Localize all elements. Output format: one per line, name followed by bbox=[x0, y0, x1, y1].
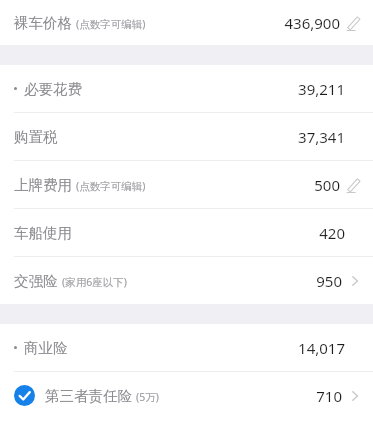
button[interactable]: 交强险 bbox=[0, 257, 373, 304]
button[interactable]: 第三者责任险 bbox=[0, 372, 373, 419]
button[interactable]: 必要花费 bbox=[0, 65, 373, 112]
staticText: 裸车价格 bbox=[14, 14, 72, 32]
staticText: 710 bbox=[316, 386, 342, 406]
staticText: (家用6座以下) bbox=[62, 275, 127, 289]
staticText: 14,017 bbox=[298, 338, 345, 358]
staticText: 购置税 bbox=[14, 128, 58, 146]
staticText: 上牌费用 bbox=[14, 176, 72, 194]
staticText: 436,900 bbox=[284, 13, 340, 33]
staticText: 950 bbox=[316, 271, 342, 291]
staticText: (点数字可编辑) bbox=[76, 17, 146, 31]
other: Edit bbox=[345, 176, 362, 193]
staticText: (5万) bbox=[136, 390, 159, 404]
other: Edit bbox=[345, 14, 362, 31]
staticText: 车船使用 bbox=[14, 224, 72, 242]
staticText: 交强险 bbox=[14, 272, 58, 290]
staticText: 商业险 bbox=[24, 339, 68, 357]
staticText: (点数字可编辑) bbox=[76, 179, 146, 193]
staticText: 500 bbox=[314, 175, 340, 195]
staticText: 37,341 bbox=[298, 127, 345, 147]
button[interactable]: 购置税 bbox=[0, 113, 373, 160]
other: More bbox=[348, 274, 362, 288]
button[interactable]: 裸车价格 bbox=[0, 0, 373, 45]
staticText: 必要花费 bbox=[24, 80, 82, 98]
other: More bbox=[348, 389, 362, 403]
staticText: 39,211 bbox=[298, 79, 345, 99]
staticText: 第三者责任险 bbox=[45, 387, 132, 405]
staticText: 420 bbox=[319, 223, 345, 243]
button[interactable]: 上牌费用 bbox=[0, 161, 373, 208]
button[interactable]: 车船使用 bbox=[0, 209, 373, 256]
button[interactable]: 商业险 bbox=[0, 324, 373, 371]
